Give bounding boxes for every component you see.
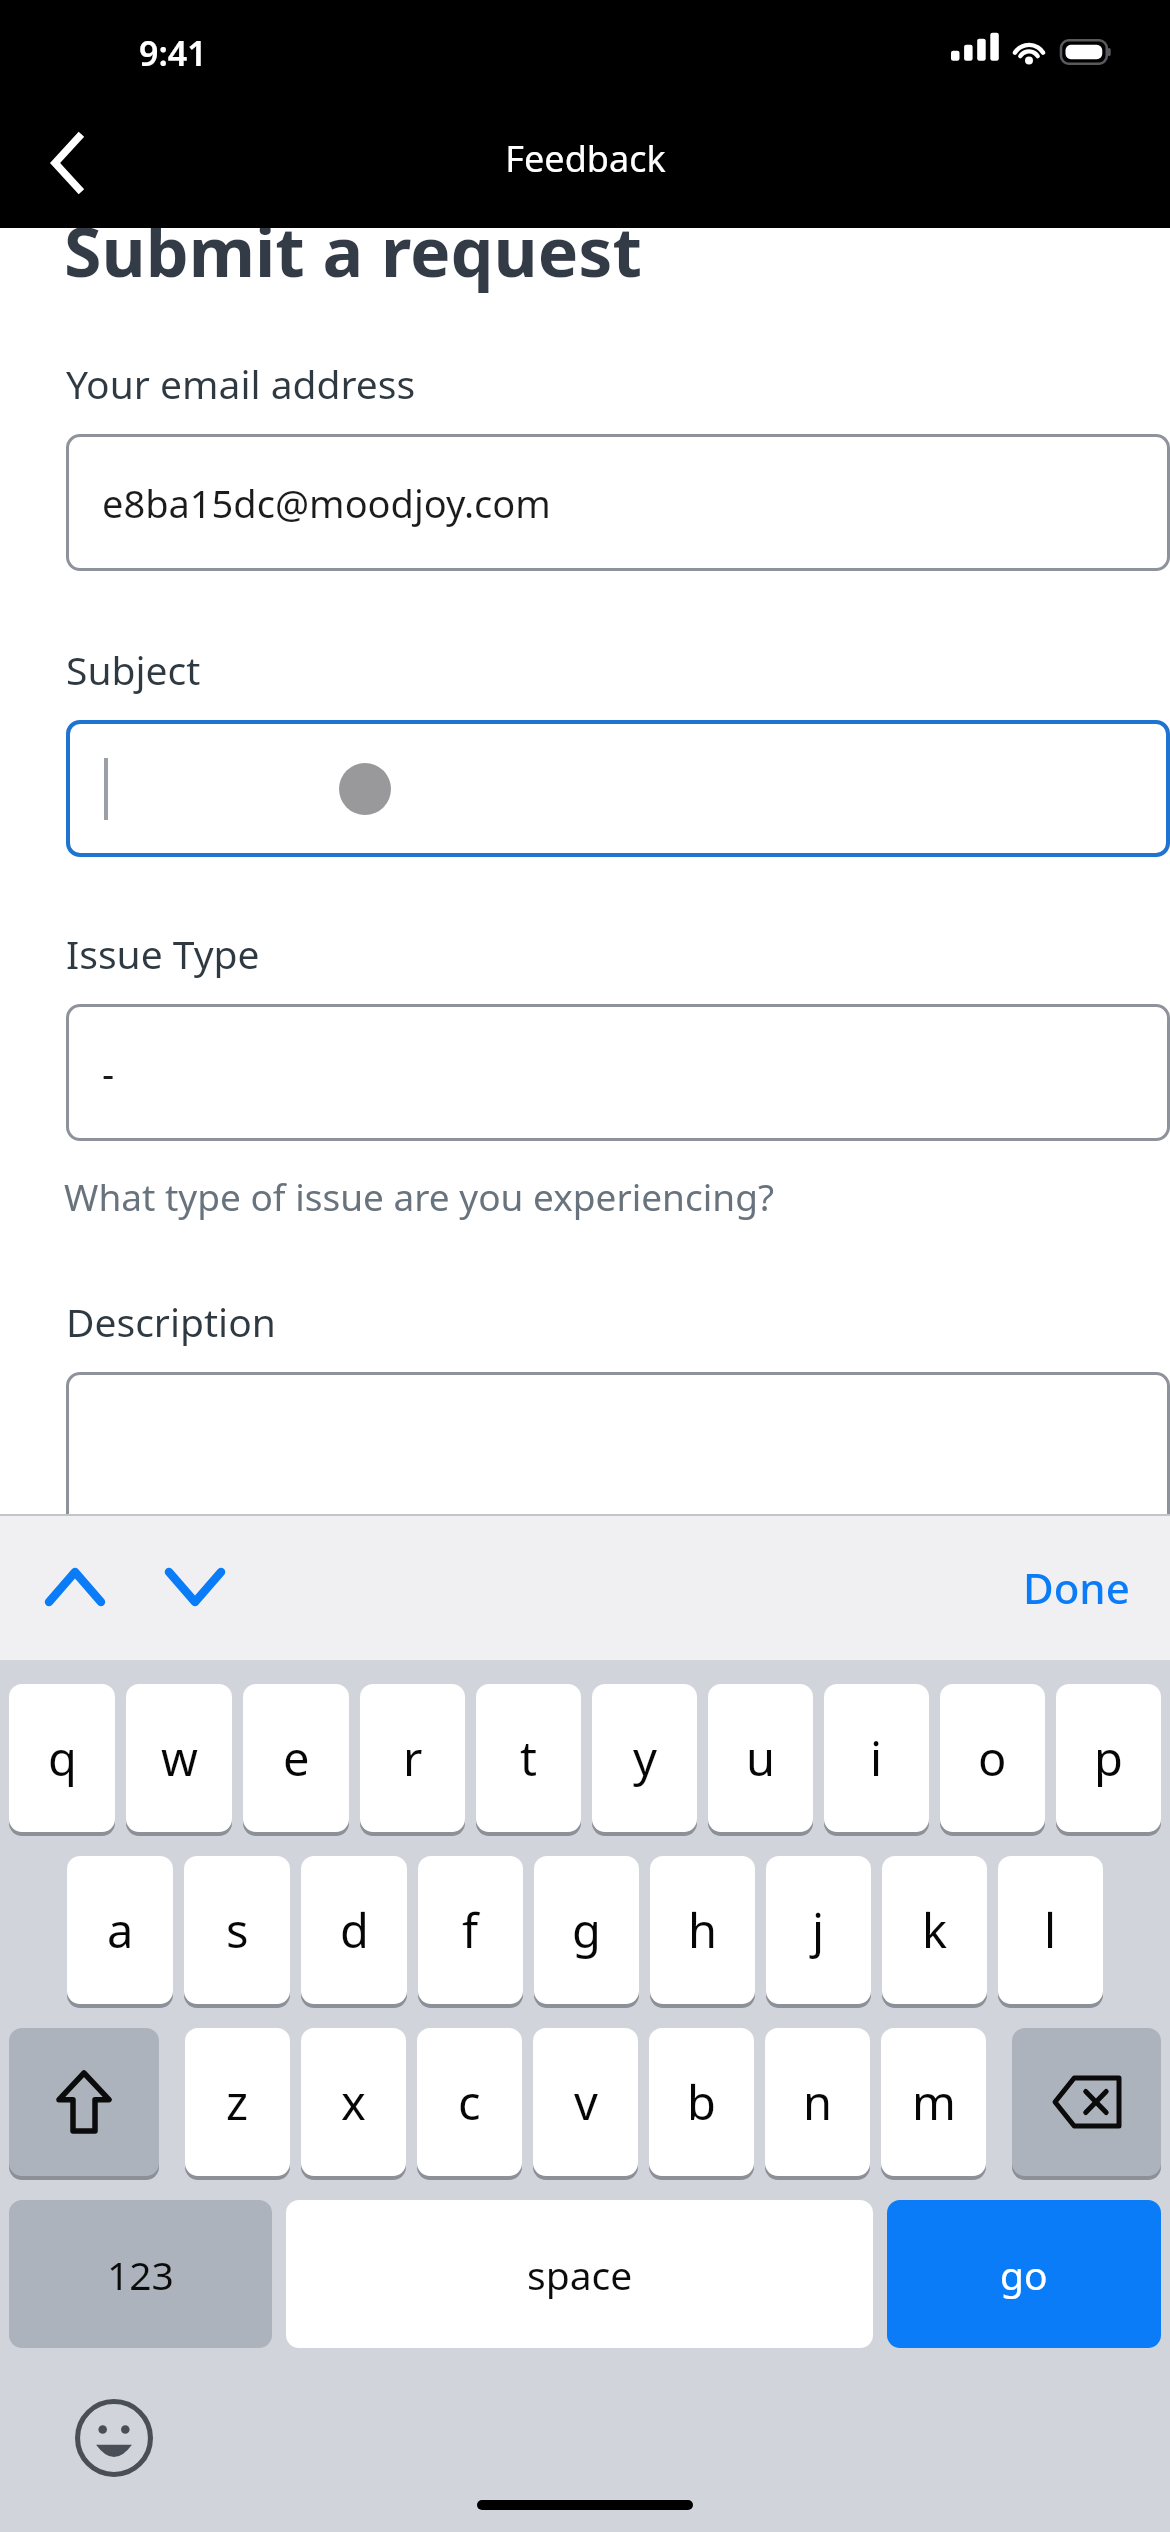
- staticText: w: [161, 1726, 198, 1790]
- staticText: r: [403, 1726, 423, 1790]
- button[interactable]: h: [650, 1856, 755, 2004]
- button[interactable]: x: [301, 2028, 406, 2176]
- staticText: q: [48, 1726, 77, 1790]
- button[interactable]: l: [998, 1856, 1103, 2004]
- button[interactable]: s: [184, 1856, 290, 2004]
- button[interactable]: k: [882, 1856, 987, 2004]
- staticText: Issue Type: [66, 927, 260, 980]
- button[interactable]: -: [66, 1004, 1170, 1141]
- staticText: k: [922, 1898, 948, 1962]
- button[interactable]: r: [360, 1684, 465, 1832]
- button[interactable]: [66, 1372, 1170, 1552]
- button[interactable]: Backspace: [1012, 2028, 1161, 2176]
- button[interactable]: m: [881, 2028, 986, 2176]
- button[interactable]: p: [1056, 1684, 1161, 1832]
- button[interactable]: u: [708, 1684, 813, 1832]
- staticText: d: [340, 1898, 369, 1962]
- staticText: o: [978, 1726, 1007, 1790]
- button[interactable]: space: [286, 2200, 873, 2348]
- button[interactable]: Shift: [9, 2028, 159, 2176]
- staticText: h: [688, 1898, 718, 1962]
- staticText: i: [870, 1726, 883, 1790]
- button[interactable]: Emoji: [72, 2396, 156, 2480]
- button[interactable]: Done: [1003, 1541, 1150, 1634]
- staticText: Submit a request: [64, 204, 642, 297]
- button[interactable]: Next field: [150, 1542, 240, 1632]
- button[interactable]: o: [940, 1684, 1045, 1832]
- staticText: f: [462, 1898, 479, 1962]
- staticText: -: [102, 1047, 115, 1099]
- staticText: Feedback: [505, 134, 666, 183]
- button[interactable]: Previous field: [30, 1542, 120, 1632]
- button[interactable]: q: [9, 1684, 115, 1832]
- staticText: g: [572, 1898, 601, 1962]
- staticText: u: [746, 1726, 776, 1790]
- staticText: What type of issue are you experiencing?: [64, 1171, 774, 1221]
- button[interactable]: y: [592, 1684, 697, 1832]
- button[interactable]: t: [476, 1684, 581, 1832]
- button[interactable]: g: [534, 1856, 639, 2004]
- staticText: z: [226, 2070, 249, 2134]
- staticText: go: [1000, 2248, 1048, 2301]
- staticText: c: [458, 2070, 481, 2134]
- staticText: b: [687, 2070, 716, 2134]
- button[interactable]: c: [417, 2028, 522, 2176]
- staticText: m: [912, 2070, 956, 2134]
- staticText: 123: [107, 2248, 174, 2301]
- button[interactable]: go: [887, 2200, 1161, 2348]
- button[interactable]: n: [765, 2028, 870, 2176]
- staticText: e: [283, 1726, 310, 1790]
- staticText: j: [812, 1898, 825, 1962]
- staticText: Subject: [66, 643, 201, 696]
- button[interactable]: e: [243, 1684, 349, 1832]
- button[interactable]: e8ba15dc@moodjoy.com: [66, 434, 1170, 571]
- staticText: t: [520, 1726, 537, 1790]
- staticText: s: [226, 1898, 249, 1962]
- button[interactable]: [66, 720, 1170, 857]
- button[interactable]: a: [67, 1856, 173, 2004]
- button[interactable]: 123: [9, 2200, 272, 2348]
- staticText: a: [107, 1898, 134, 1962]
- staticText: n: [803, 2070, 833, 2134]
- staticText: Done: [1023, 1559, 1130, 1616]
- staticText: l: [1044, 1898, 1057, 1962]
- staticText: y: [633, 1726, 657, 1790]
- button[interactable]: v: [533, 2028, 638, 2176]
- button[interactable]: j: [766, 1856, 871, 2004]
- staticText: 9:41: [139, 30, 207, 76]
- staticText: e8ba15dc@moodjoy.com: [102, 477, 551, 529]
- staticText: v: [574, 2070, 598, 2134]
- button[interactable]: i: [824, 1684, 929, 1832]
- staticText: p: [1094, 1726, 1123, 1790]
- button[interactable]: f: [418, 1856, 523, 2004]
- staticText: Your email address: [66, 357, 416, 410]
- button[interactable]: w: [126, 1684, 232, 1832]
- staticText: Description: [66, 1295, 276, 1348]
- staticText: space: [527, 2248, 633, 2301]
- button[interactable]: d: [301, 1856, 407, 2004]
- button[interactable]: Back: [24, 119, 112, 207]
- staticText: x: [341, 2070, 366, 2134]
- button[interactable]: b: [649, 2028, 754, 2176]
- button[interactable]: z: [185, 2028, 290, 2176]
